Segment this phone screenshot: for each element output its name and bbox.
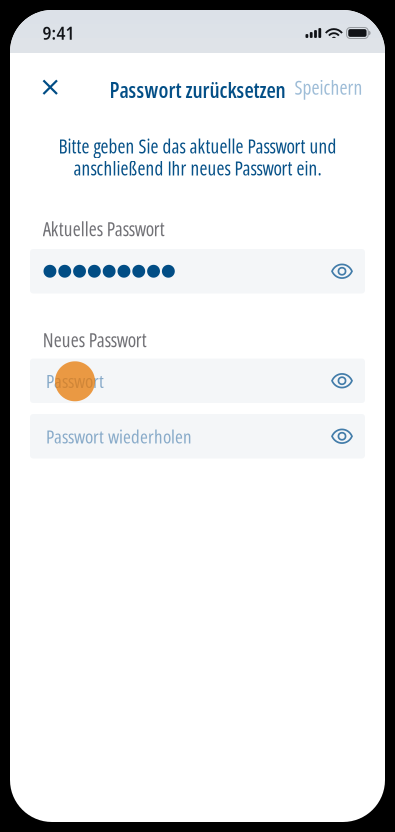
staticText: anschließend Ihr neues Passwort ein. (73, 155, 321, 181)
button[interactable]: Schließen (28, 65, 72, 109)
button[interactable]: Passwort anzeigen (319, 358, 365, 403)
staticText: Passwort zurücksetzen (109, 75, 285, 104)
staticText: 9:41 (43, 20, 75, 45)
staticText: Bitte geben Sie das aktuelle Passwort un… (58, 133, 336, 159)
staticText: Neues Passwort (43, 327, 147, 353)
staticText: Speichern (295, 74, 363, 100)
button[interactable]: Passwort anzeigen (319, 249, 365, 293)
staticText: Passwort wiederholen (46, 423, 192, 449)
button[interactable]: Passwort anzeigen (319, 414, 365, 458)
staticText: Aktuelles Passwort (43, 216, 165, 242)
staticText: Passwort (46, 368, 104, 394)
button[interactable]: Speichern (279, 65, 363, 109)
